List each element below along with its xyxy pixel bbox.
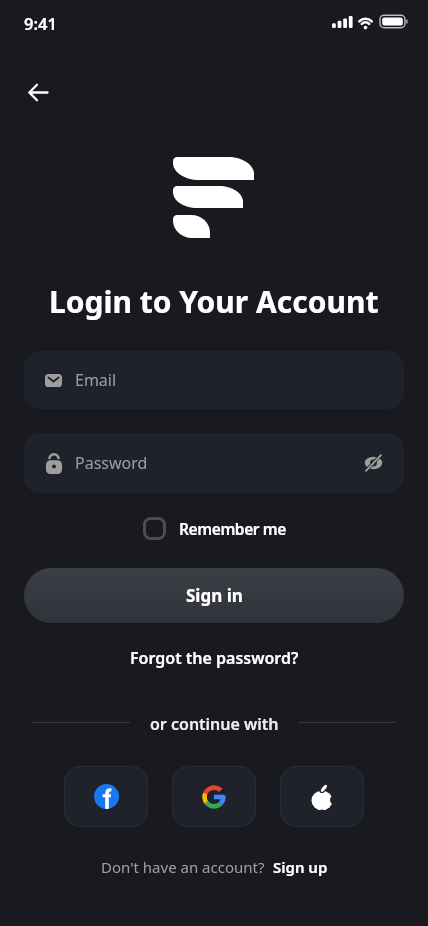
staticText: Remember me <box>179 518 286 539</box>
button[interactable]: Forgot the password? <box>130 647 299 669</box>
staticText: Sign in <box>186 584 243 607</box>
button[interactable]: Password <box>24 433 404 493</box>
button[interactable]: Email <box>24 351 404 409</box>
button[interactable]: Sign up <box>273 857 328 877</box>
button[interactable] <box>172 766 256 827</box>
button[interactable] <box>22 76 56 110</box>
staticText: Password <box>75 452 148 474</box>
staticText: or continue with <box>150 713 279 735</box>
staticText: Email <box>75 369 117 391</box>
staticText: 9:41 <box>24 12 57 34</box>
button[interactable] <box>64 766 148 827</box>
button[interactable]: Sign in <box>24 568 404 623</box>
staticText: Sign up <box>273 857 328 877</box>
button[interactable] <box>280 766 364 827</box>
staticText: Login to Your Account <box>49 281 379 322</box>
staticText: Forgot the password? <box>130 647 299 669</box>
staticText: Don't have an account? <box>101 857 265 877</box>
button[interactable]: Remember me <box>143 517 286 540</box>
